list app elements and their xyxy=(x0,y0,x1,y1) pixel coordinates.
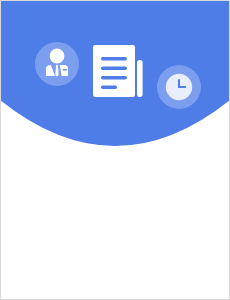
button[interactable]: Contacts, documents and schedule header xyxy=(0,0,230,300)
